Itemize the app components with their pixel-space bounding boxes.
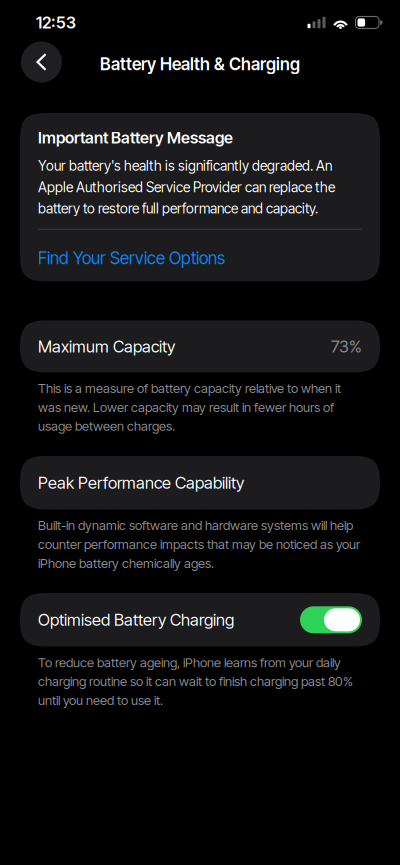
staticText: 73% xyxy=(331,336,362,356)
staticText: To reduce battery ageing, iPhone learns … xyxy=(38,655,353,708)
staticText: Important Battery Message xyxy=(38,128,233,147)
button[interactable]: Back xyxy=(21,41,62,82)
staticText: Your battery's health is significantly d… xyxy=(38,157,335,217)
staticText: Built-in dynamic software and hardware s… xyxy=(38,517,360,571)
staticText: Peak Performance Capability xyxy=(38,473,244,493)
staticText: Find Your Service Options xyxy=(38,248,225,268)
staticText: This is a measure of battery capacity re… xyxy=(38,380,341,434)
button[interactable]: Maximum Capacity xyxy=(0,320,380,372)
staticText: Battery Health & Charging xyxy=(100,54,300,74)
button[interactable]: Important Battery Message xyxy=(0,113,380,281)
button[interactable]: Peak Performance Capability xyxy=(0,456,380,509)
staticText: Optimised Battery Charging xyxy=(38,610,234,630)
staticText: Maximum Capacity xyxy=(38,336,175,356)
staticText: 12:53 xyxy=(36,13,76,32)
button[interactable]: Optimised Battery Charging xyxy=(0,593,380,647)
